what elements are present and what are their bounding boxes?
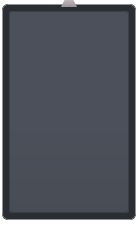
button[interactable]: Device screen xyxy=(2,4,136,220)
button[interactable] xyxy=(9,11,129,213)
